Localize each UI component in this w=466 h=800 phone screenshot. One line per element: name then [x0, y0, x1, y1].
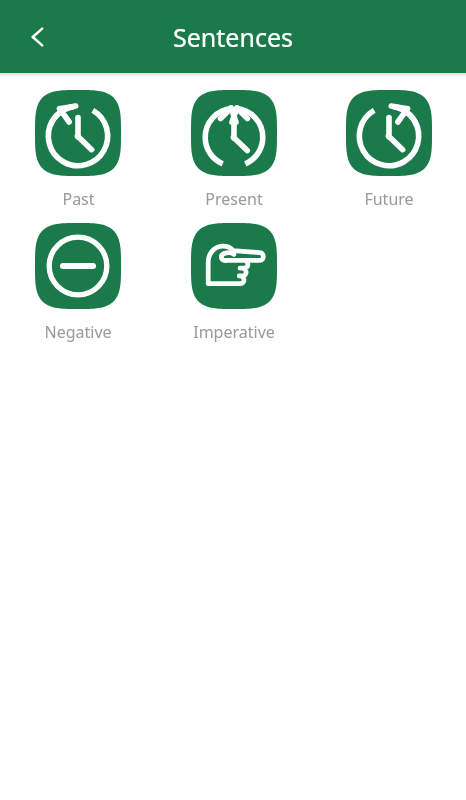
staticText: Future — [364, 188, 414, 210]
button[interactable]: Back — [12, 11, 64, 63]
button[interactable]: Past — [0, 77, 156, 210]
button[interactable]: Future — [311, 77, 466, 210]
staticText: Sentences — [173, 20, 293, 54]
staticText: Imperative — [193, 321, 275, 343]
staticText: Past — [62, 188, 95, 210]
button[interactable]: Present — [156, 77, 311, 210]
staticText: Present — [205, 188, 263, 210]
staticText: Negative — [44, 321, 112, 343]
button[interactable]: Negative — [0, 210, 156, 343]
button[interactable]: Imperative — [156, 210, 311, 343]
